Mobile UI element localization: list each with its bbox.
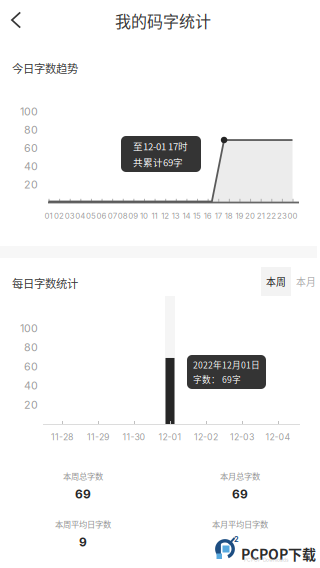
staticText: 12-03 — [230, 432, 254, 442]
staticText: 本月平均日字数 — [212, 518, 268, 530]
staticText: 06 — [96, 211, 106, 221]
button[interactable]: 本月 — [293, 267, 319, 296]
staticText: 11-28 — [51, 432, 73, 442]
staticText: 21 — [257, 211, 265, 221]
staticText: 今日字数趋势 — [12, 60, 78, 76]
staticText: 09 — [128, 211, 138, 221]
staticText: 19 — [235, 211, 243, 221]
staticText: 69 — [75, 487, 91, 501]
staticText: 11-29 — [87, 432, 109, 442]
staticText: 11-30 — [122, 432, 145, 442]
staticText: 05 — [86, 211, 96, 221]
staticText: 60 — [24, 142, 38, 155]
staticText: 每日字数统计 — [12, 275, 78, 291]
staticText: 20 — [24, 398, 38, 411]
button[interactable]: Back — [0, 0, 37, 40]
staticText: PCPOP Downloads — [244, 557, 289, 563]
staticText: 08 — [118, 211, 128, 221]
staticText: 至12-01 17时 — [133, 139, 188, 153]
staticText: PCPOP下载 — [241, 543, 316, 564]
staticText: 80 — [24, 123, 38, 136]
staticText: 07 — [108, 211, 117, 221]
staticText: 2 — [236, 535, 244, 549]
staticText: 11 — [152, 211, 158, 221]
staticText: 17 — [215, 211, 222, 221]
staticText: 12-02 — [194, 432, 218, 442]
staticText: 60 — [24, 360, 38, 373]
staticText: 40 — [24, 379, 38, 392]
staticText: 10 — [140, 211, 148, 221]
staticText: 20 — [245, 211, 255, 221]
staticText: 100 — [20, 322, 38, 335]
staticText: 23 — [277, 211, 287, 221]
staticText: 2022年12月01日 — [193, 358, 260, 371]
staticText: 共累计69字 — [133, 155, 183, 169]
staticText: 12 — [161, 211, 169, 221]
staticText: 15 — [193, 211, 201, 221]
staticText: 01 — [44, 211, 52, 221]
staticText: 本月总字数 — [220, 470, 260, 482]
staticText: 我的码字统计 — [115, 9, 211, 32]
staticText: 03 — [65, 211, 75, 221]
staticText: 本周 — [266, 274, 286, 289]
staticText: 12-04 — [265, 432, 290, 442]
staticText: 69 — [232, 487, 248, 501]
staticText: 本月 — [296, 274, 316, 289]
staticText: 本周总字数 — [63, 470, 103, 482]
button[interactable]: 本周 — [261, 267, 291, 296]
staticText: 16 — [204, 211, 212, 221]
staticText: 13 — [172, 211, 180, 221]
staticText: 本周平均日字数 — [55, 518, 111, 530]
staticText: 12-01 — [158, 432, 181, 442]
staticText: 字数： 69字 — [193, 373, 241, 385]
staticText: 40 — [24, 160, 38, 173]
staticText: 04 — [75, 211, 85, 221]
staticText: 20 — [24, 178, 38, 191]
staticText: 14 — [182, 211, 190, 221]
staticText: 22 — [266, 211, 276, 221]
staticText: 100 — [20, 105, 38, 118]
staticText: 02 — [54, 211, 64, 221]
staticText: 00 — [287, 211, 297, 221]
staticText: 18 — [225, 211, 233, 221]
staticText: 2 — [234, 535, 239, 544]
staticText: 9 — [79, 535, 87, 549]
staticText: 80 — [24, 341, 38, 354]
